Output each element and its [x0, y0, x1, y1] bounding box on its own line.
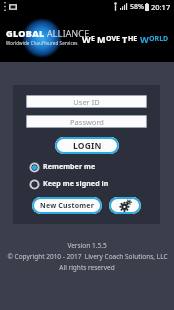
staticText: Keep me signed in: [43, 179, 109, 189]
staticText: ALLIANCE: [47, 27, 90, 39]
staticText: LOGIN: [73, 140, 102, 152]
staticText: W: [82, 33, 91, 45]
staticText: User ID: [73, 97, 100, 107]
staticText: 58%: [130, 2, 144, 12]
staticText: Version 1.5.5: [67, 241, 107, 250]
button[interactable]: Password: [26, 115, 147, 128]
staticText: W: [140, 33, 149, 45]
staticText: T: [122, 33, 128, 45]
staticText: New Customer: [40, 201, 95, 211]
staticText: Remember me: [43, 162, 96, 172]
staticText: All rights reserved: [59, 263, 115, 272]
staticText: HE: [128, 34, 140, 44]
staticText: 20:17: [151, 2, 171, 12]
staticText: M: [97, 33, 106, 45]
button[interactable]: User ID: [26, 95, 147, 108]
staticText: © Copyright 2010 - 2017 Livery Coach Sol…: [7, 252, 168, 261]
staticText: Password: [70, 117, 104, 127]
button[interactable]: New Customer: [32, 197, 102, 214]
button[interactable]: Remember me: [26, 162, 147, 172]
staticText: ORLD: [149, 34, 169, 44]
button[interactable]: Settings: [109, 197, 141, 214]
button[interactable]: Keep me signed in: [26, 179, 147, 189]
staticText: GLOBAL: [6, 27, 45, 39]
staticText: OVE: [106, 34, 122, 44]
staticText: E: [91, 34, 97, 44]
button[interactable]: LOGIN: [55, 137, 119, 154]
staticText: Worldwide Chauffeured Services: [6, 40, 78, 46]
